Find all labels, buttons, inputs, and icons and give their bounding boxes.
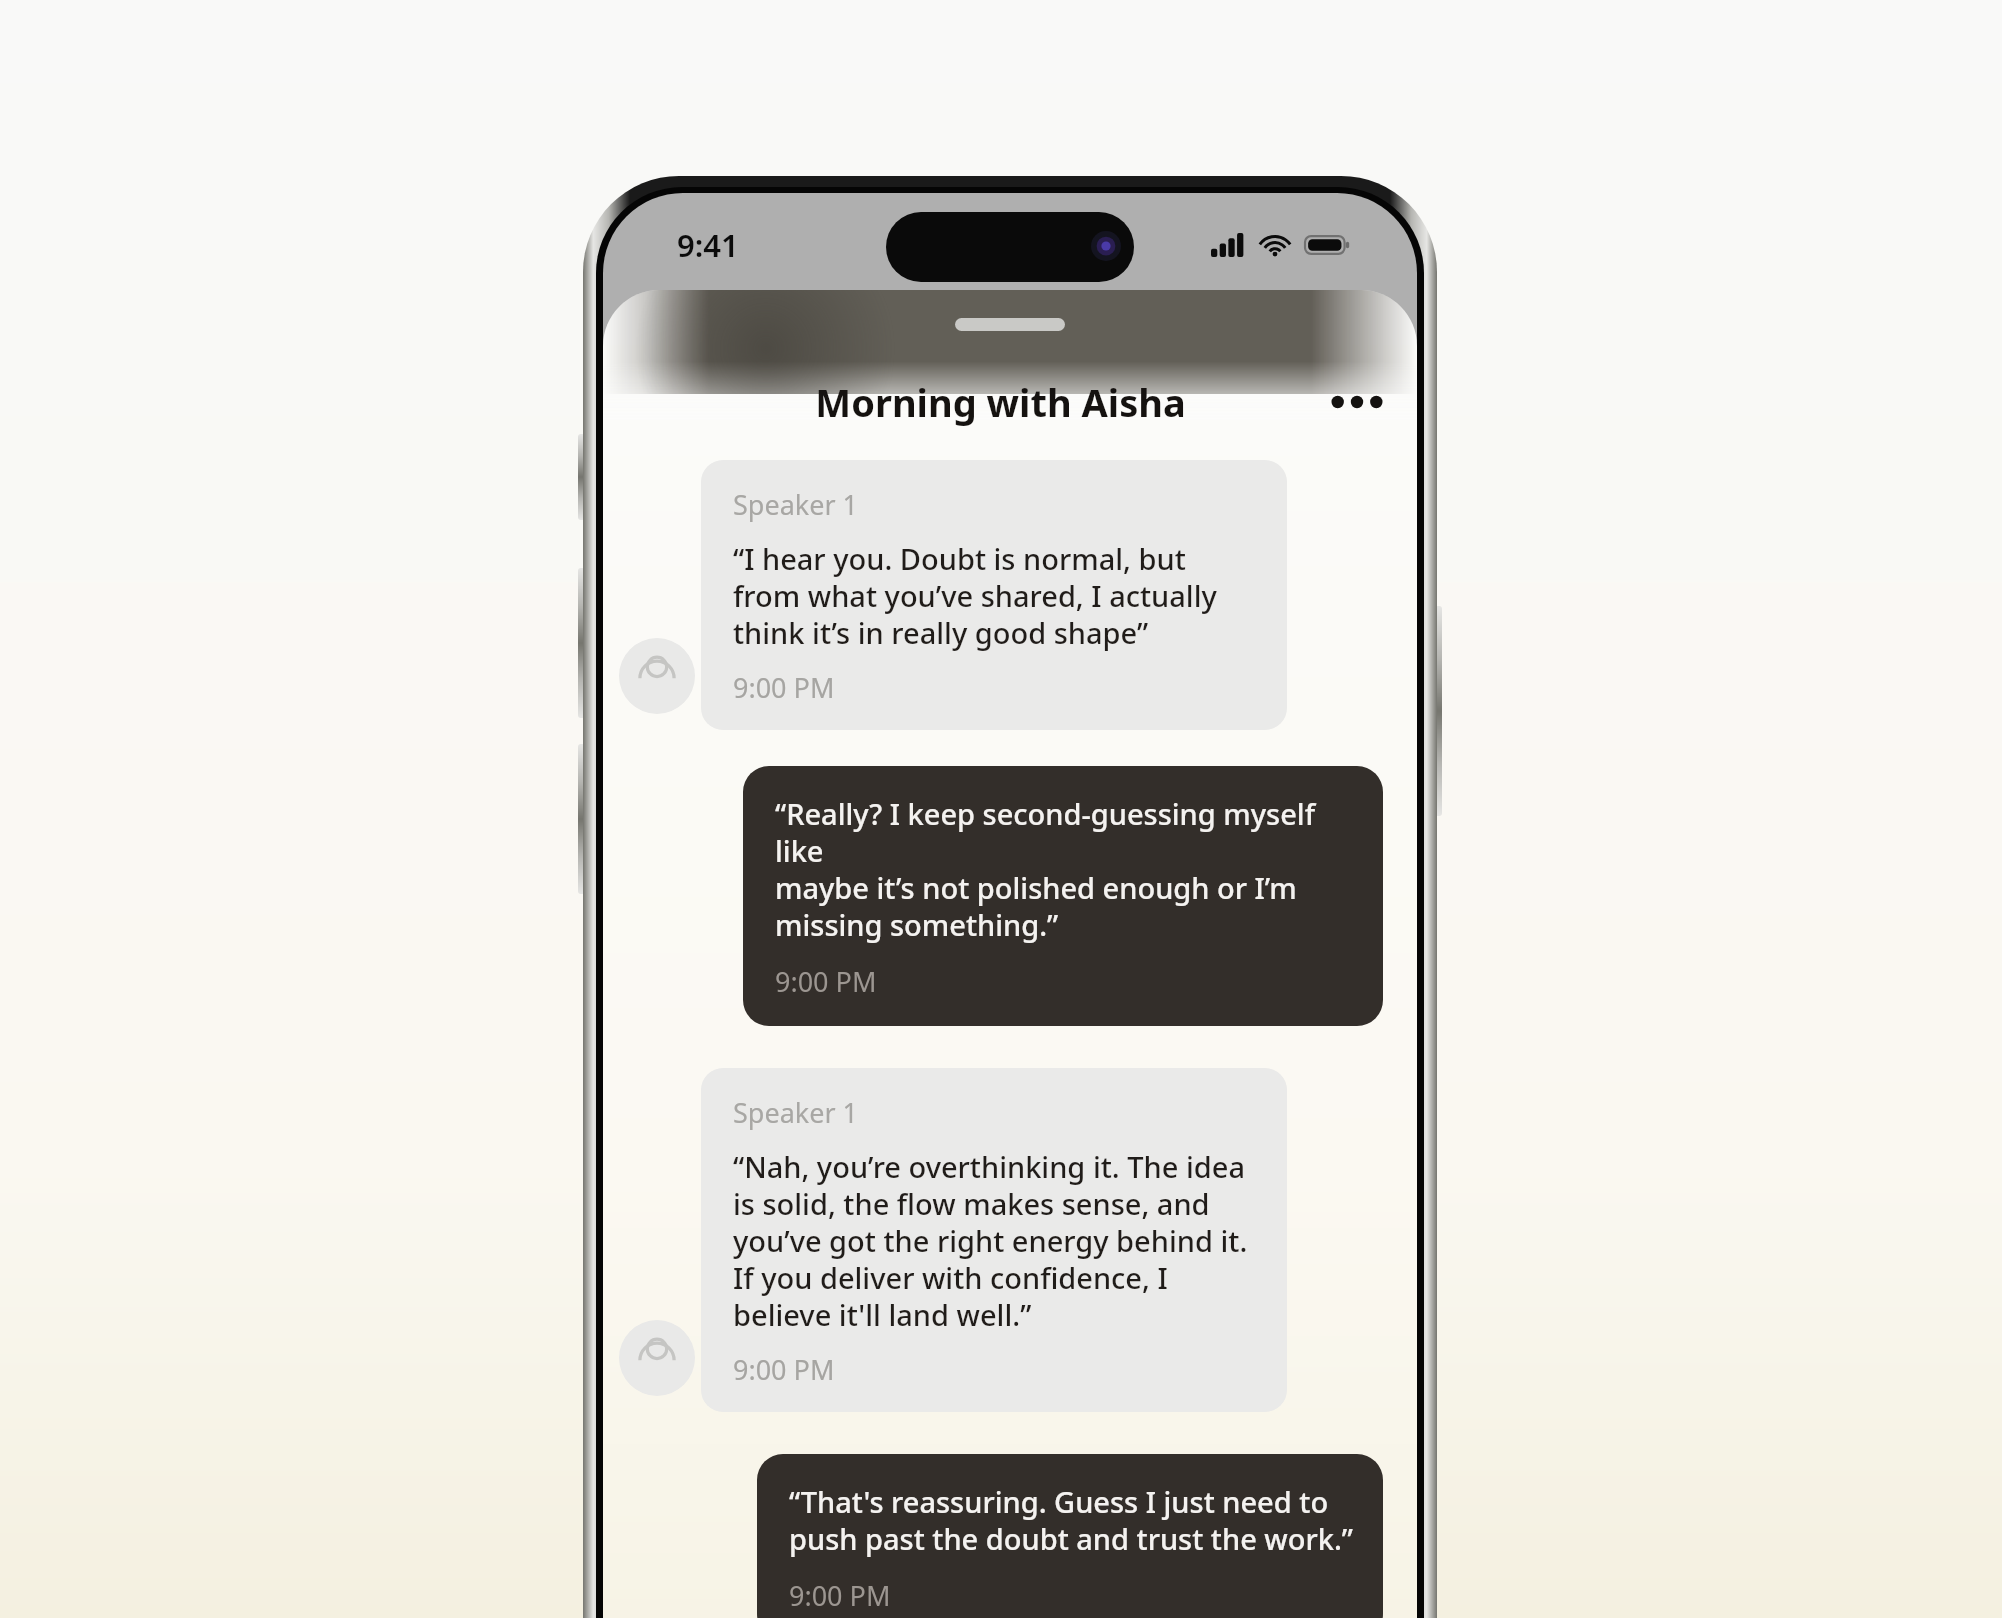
staticText: Speaker 1 [733, 486, 859, 523]
staticText: “That's reassuring. Guess I just need to… [789, 1482, 1353, 1559]
staticText: Speaker 1 [733, 1094, 859, 1131]
staticText: 9:00 PM [733, 669, 835, 706]
staticText: 9:00 PM [775, 963, 877, 1000]
staticText: 9:00 PM [789, 1577, 891, 1614]
staticText: “I hear you. Doubt is normal, but from w… [733, 539, 1217, 653]
staticText: Morning with Aisha [815, 376, 1186, 428]
button[interactable]: Speaker 1 [619, 1068, 1287, 1412]
button[interactable]: Speaker 1 [619, 460, 1287, 730]
staticText: 9:00 PM [733, 1351, 835, 1388]
button[interactable]: More options [1321, 366, 1393, 438]
staticText: “Really? I keep second-guessing myself l… [775, 794, 1353, 945]
button[interactable]: “Really? I keep second-guessing myself l… [743, 766, 1383, 1026]
button[interactable]: “That's reassuring. Guess I just need to… [743, 1454, 1383, 1618]
staticText: 9:41 [677, 224, 739, 266]
staticText: “Nah, you’re overthinking it. The idea i… [733, 1147, 1248, 1335]
